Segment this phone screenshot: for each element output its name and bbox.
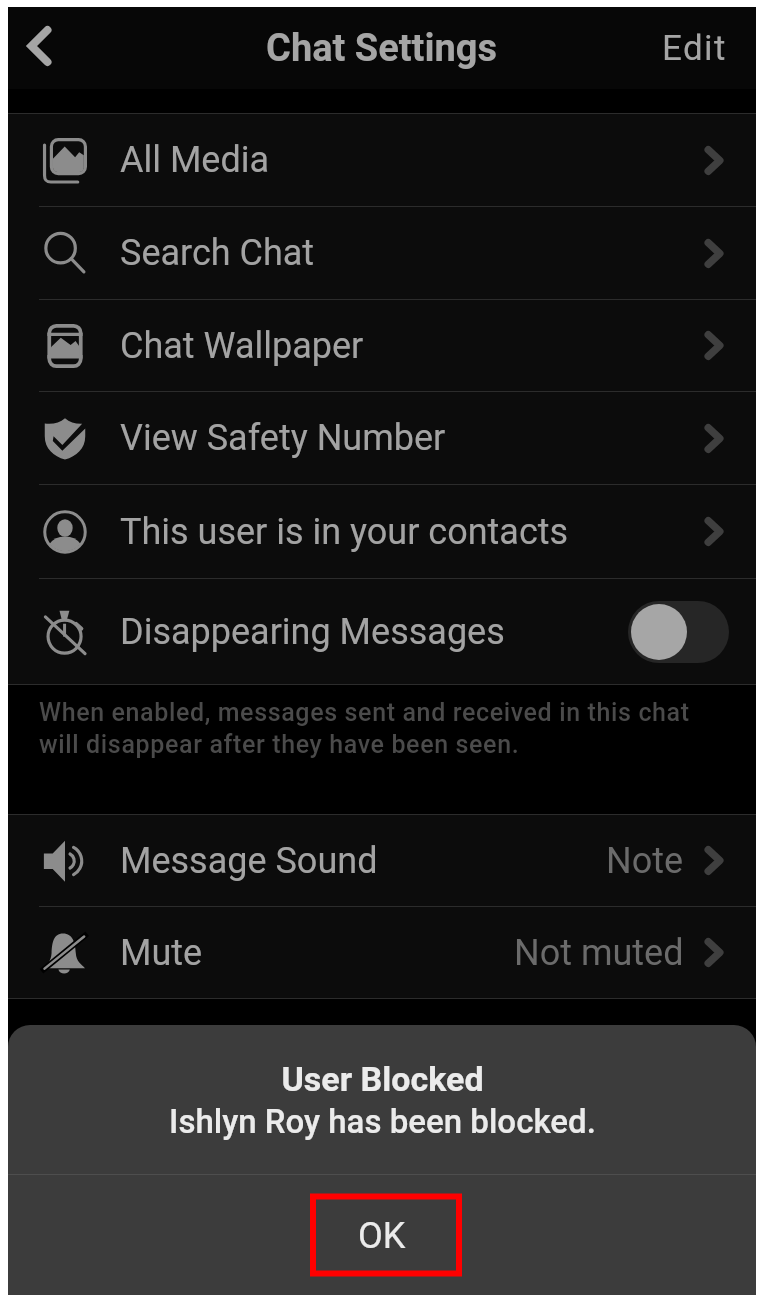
staticText: Message Sound bbox=[120, 840, 378, 882]
button[interactable]: Message Sound bbox=[8, 815, 756, 906]
button[interactable]: View Safety Number bbox=[8, 392, 756, 484]
button[interactable]: OK bbox=[306, 1194, 458, 1277]
button[interactable]: Mute bbox=[8, 907, 756, 998]
staticText: Disappearing Messages bbox=[120, 611, 505, 653]
staticText: Ishlyn Roy has been blocked. bbox=[169, 1102, 596, 1141]
staticText: View Safety Number bbox=[120, 417, 446, 459]
button[interactable]: Back bbox=[8, 7, 74, 89]
staticText: Chat Wallpaper bbox=[120, 325, 364, 367]
button[interactable]: This user is in your contacts bbox=[8, 485, 756, 578]
staticText: This user is in your contacts bbox=[120, 511, 569, 553]
button[interactable]: Disappearing Messages bbox=[8, 579, 756, 684]
staticText: Note bbox=[606, 840, 684, 882]
button[interactable]: Search Chat bbox=[8, 207, 756, 299]
button[interactable]: Chat Wallpaper bbox=[8, 300, 756, 391]
staticText: All Media bbox=[120, 139, 270, 181]
button[interactable]: Edit bbox=[628, 7, 756, 89]
staticText: Search Chat bbox=[120, 232, 315, 274]
button[interactable]: All Media bbox=[8, 114, 756, 206]
staticText: When enabled, messages sent and received… bbox=[39, 698, 732, 759]
staticText: Mute bbox=[120, 932, 203, 974]
button[interactable]: Toggle Disappearing Messages bbox=[628, 601, 729, 663]
staticText: Edit bbox=[662, 28, 727, 69]
staticText: Not muted bbox=[514, 932, 684, 974]
staticText: User Blocked bbox=[281, 1059, 484, 1099]
staticText: OK bbox=[358, 1215, 406, 1257]
staticText: Chat Settings bbox=[266, 26, 498, 71]
